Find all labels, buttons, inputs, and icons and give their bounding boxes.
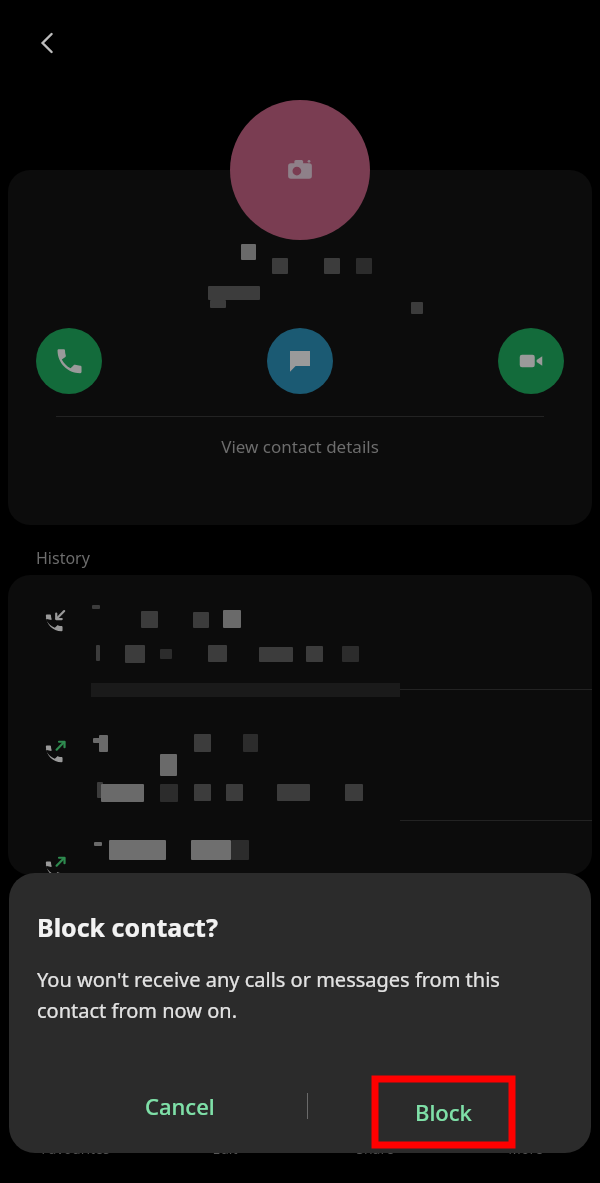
button[interactable]: More xyxy=(450,1139,600,1183)
button[interactable]: Cancel xyxy=(121,1077,239,1135)
staticText: Edit xyxy=(212,1139,238,1158)
button[interactable] xyxy=(8,575,592,680)
button[interactable]: Edit xyxy=(150,1139,300,1183)
staticText: Cancel xyxy=(145,1091,215,1121)
staticText: More xyxy=(508,1139,543,1158)
button[interactable] xyxy=(8,696,592,814)
button[interactable]: View contact details xyxy=(8,417,592,475)
staticText: You won't receive any calls or messages … xyxy=(37,966,569,1024)
button[interactable]: Share xyxy=(300,1139,450,1183)
button[interactable]: Message xyxy=(267,328,333,394)
button[interactable]: Block xyxy=(375,1079,512,1145)
button[interactable] xyxy=(8,828,592,875)
button[interactable]: Favourites xyxy=(0,1139,150,1183)
staticText: Block xyxy=(415,1097,472,1127)
staticText: Share xyxy=(356,1139,394,1158)
button[interactable]: Back xyxy=(30,25,66,61)
staticText: Favourites xyxy=(41,1139,110,1158)
button[interactable]: Call xyxy=(36,328,102,394)
staticText: Block contact? xyxy=(37,910,218,944)
button[interactable]: Video call xyxy=(498,328,564,394)
button[interactable]: Contact photo xyxy=(230,100,370,240)
staticText: View contact details xyxy=(221,435,379,458)
staticText: History xyxy=(36,547,90,569)
